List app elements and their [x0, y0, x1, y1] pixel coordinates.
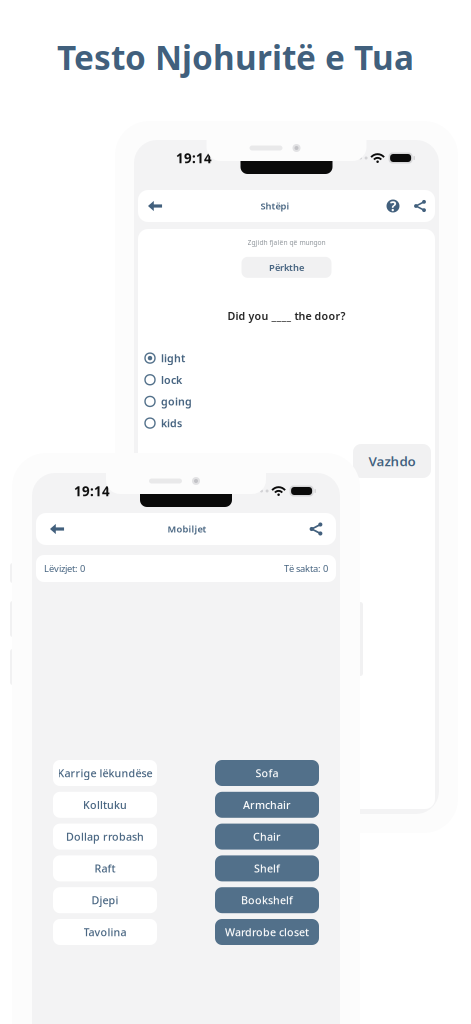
staticText: Dollap rrobash [66, 829, 144, 844]
button[interactable]: Armchair [215, 792, 319, 818]
staticText: Did you ____ the door? [227, 309, 345, 323]
staticText: Armchair [243, 798, 291, 812]
button[interactable]: Bookshelf [215, 887, 319, 913]
staticText: lock [161, 373, 182, 387]
button[interactable]: Karrige lëkundëse [53, 760, 157, 786]
button[interactable]: lock [145, 373, 428, 387]
staticText: Karrige lëkundëse [57, 766, 152, 780]
button[interactable]: Dollap rrobash [53, 824, 157, 850]
staticText: going [161, 394, 192, 409]
button[interactable]: Share [306, 518, 326, 540]
staticText: Lëvizjet: 0 [44, 562, 85, 575]
button[interactable]: Shelf [215, 855, 319, 881]
button[interactable]: Chair [215, 824, 319, 850]
staticText: light [161, 351, 185, 365]
staticText: Tavolina [83, 925, 126, 939]
staticText: Shtëpi [260, 200, 289, 212]
staticText: ? [390, 197, 396, 215]
button[interactable]: Djepi [53, 887, 157, 913]
button[interactable]: kids [145, 416, 428, 430]
button[interactable]: Back [144, 194, 166, 218]
button[interactable]: light [145, 351, 428, 365]
staticText: Testo Njohuritë e Tua [57, 35, 414, 79]
staticText: Zgjidh fjalën që mungon [247, 238, 325, 247]
staticText: Djepi [91, 893, 118, 907]
staticText: kids [161, 416, 182, 430]
staticText: Kolltuku [83, 798, 127, 812]
button[interactable]: Raft [53, 855, 157, 881]
staticText: Raft [94, 861, 115, 875]
staticText: Chair [253, 829, 281, 844]
button[interactable]: Sofa [215, 760, 319, 786]
button[interactable]: going [145, 394, 428, 409]
staticText: Të sakta: 0 [284, 562, 328, 575]
staticText: Bookshelf [241, 893, 293, 907]
staticText: 19:14 [74, 482, 110, 500]
staticText: Sofa [255, 766, 278, 780]
button[interactable]: Help [384, 196, 402, 216]
button[interactable]: Vazhdo [353, 444, 431, 478]
button[interactable]: Përkthe [241, 257, 331, 278]
staticText: Mobiljet [167, 523, 206, 535]
staticText: Përkthe [269, 261, 304, 274]
button[interactable]: Back [46, 517, 68, 541]
button[interactable]: Kolltuku [53, 792, 157, 818]
staticText: Shelf [254, 861, 280, 875]
staticText: Wardrobe closet [225, 925, 309, 939]
staticText: 19:14 [176, 149, 212, 167]
button[interactable]: Share [411, 196, 429, 216]
button[interactable]: Tavolina [53, 919, 157, 945]
staticText: Vazhdo [368, 452, 415, 470]
button[interactable]: Wardrobe closet [215, 919, 319, 945]
